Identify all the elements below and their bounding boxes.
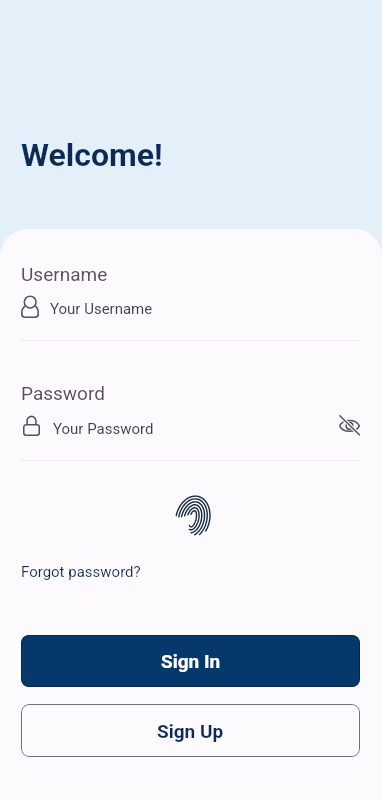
- staticText: Your Username: [50, 300, 153, 318]
- button[interactable]: Sign in with fingerprint: [170, 496, 218, 547]
- staticText: Sign In: [161, 650, 221, 672]
- button[interactable]: Sign Up: [21, 704, 360, 757]
- staticText: Your Password: [53, 420, 154, 438]
- staticText: Password: [21, 382, 105, 404]
- button[interactable]: Sign In: [21, 635, 360, 687]
- button[interactable]: Forgot password?: [21, 563, 141, 581]
- button[interactable]: Your Username: [0, 288, 382, 324]
- staticText: Username: [21, 263, 108, 285]
- staticText: Sign Up: [157, 720, 224, 742]
- staticText: Welcome!: [21, 136, 163, 174]
- button[interactable]: Show password: [335, 411, 363, 439]
